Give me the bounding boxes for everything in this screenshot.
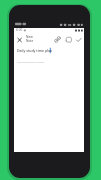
staticText: 8:00 — [16, 28, 23, 32]
button[interactable]: What do you want to record? — [17, 61, 44, 64]
staticText: Note — [26, 39, 34, 43]
button[interactable] — [65, 36, 73, 44]
button[interactable]: New — [26, 35, 34, 43]
staticText: Daily study time plan — [17, 48, 53, 53]
staticText: New — [26, 35, 33, 39]
button[interactable] — [17, 37, 23, 43]
button[interactable] — [53, 36, 61, 44]
button[interactable] — [16, 46, 82, 55]
button[interactable] — [75, 36, 83, 44]
